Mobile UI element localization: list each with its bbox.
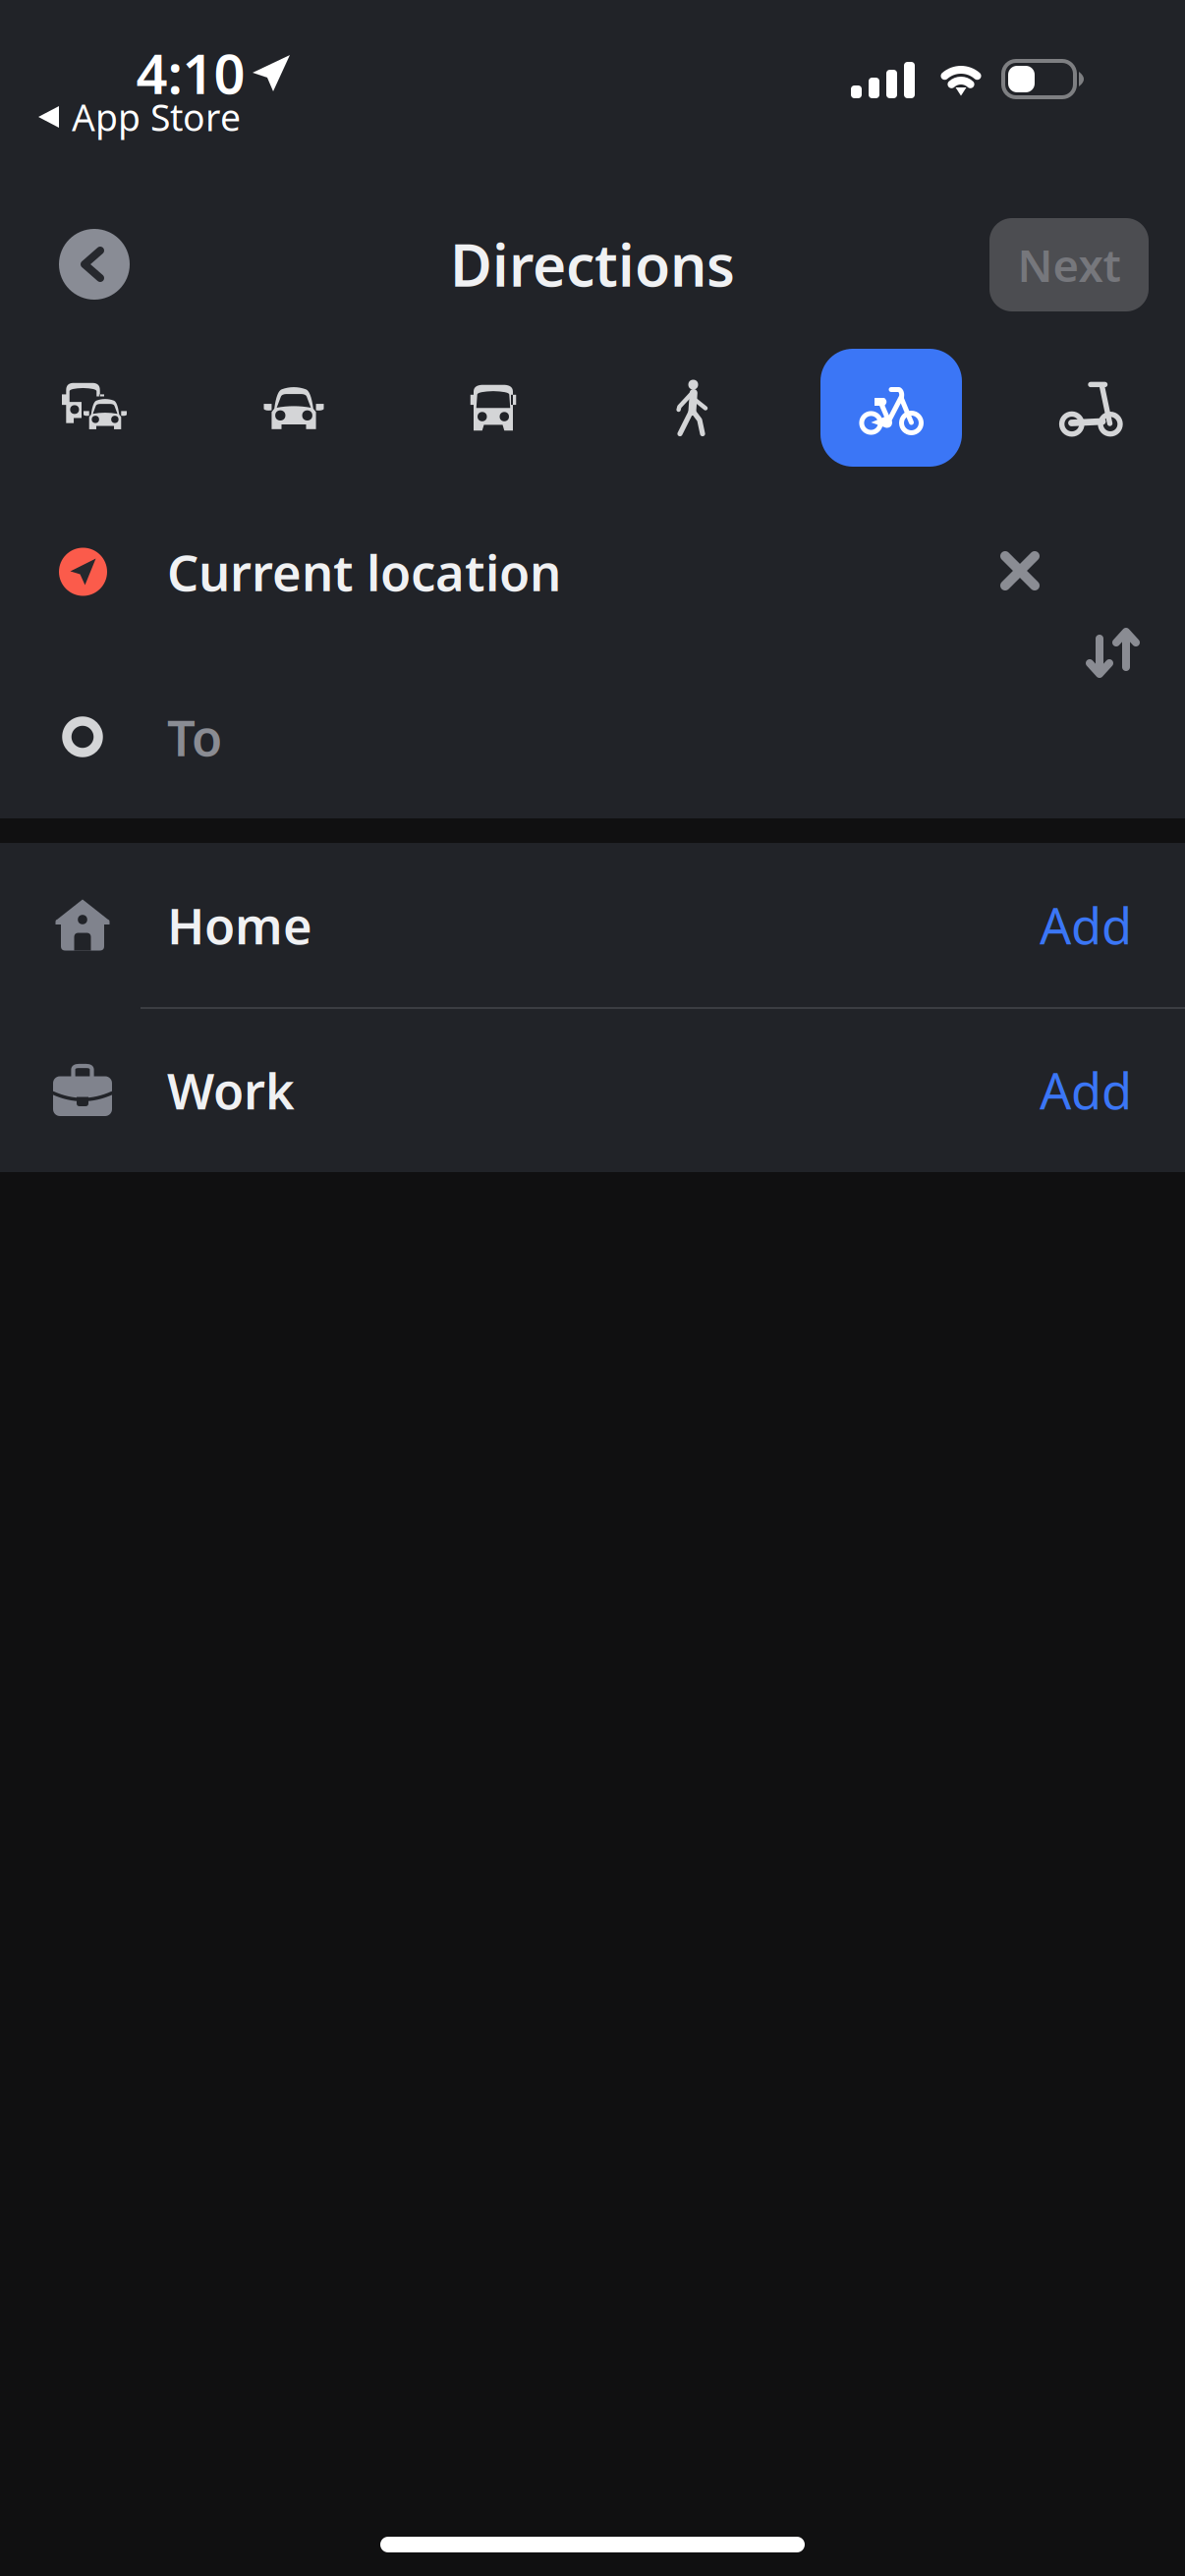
button[interactable]: To bbox=[0, 676, 943, 798]
button[interactable]: Walk bbox=[608, 344, 775, 472]
staticText: Directions bbox=[450, 226, 735, 302]
button[interactable]: Home bbox=[0, 843, 1185, 1007]
staticText: 4:10 bbox=[136, 36, 245, 109]
button[interactable]: Drive with traffic bbox=[11, 344, 178, 472]
button[interactable]: Back bbox=[45, 215, 143, 313]
staticText: Add bbox=[1040, 1057, 1132, 1123]
staticText: Next bbox=[1017, 235, 1121, 294]
button[interactable]: Transit bbox=[410, 344, 577, 472]
button[interactable]: Current location bbox=[0, 511, 943, 633]
staticText: Current location bbox=[167, 539, 561, 605]
staticText: Home bbox=[167, 892, 312, 958]
staticText: Work bbox=[167, 1057, 295, 1123]
staticText: To bbox=[167, 704, 222, 770]
button[interactable]: Next bbox=[989, 218, 1149, 311]
staticText: Add bbox=[1040, 892, 1132, 958]
button[interactable]: Swap start and destination bbox=[1089, 629, 1177, 717]
staticText: App Store bbox=[72, 93, 241, 141]
button[interactable]: Cycle bbox=[808, 344, 975, 472]
button[interactable]: Drive bbox=[210, 344, 377, 472]
button[interactable]: Work bbox=[0, 1008, 1185, 1172]
button[interactable]: Scooter bbox=[1006, 344, 1173, 472]
button[interactable]: Clear bbox=[973, 524, 1067, 618]
